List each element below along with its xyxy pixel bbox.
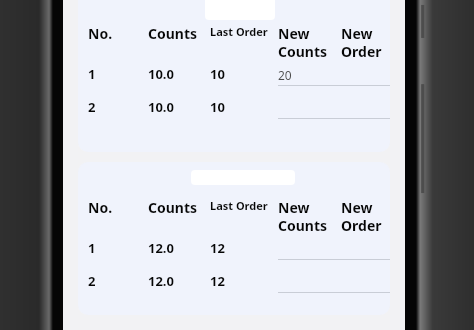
button[interactable]: 1 — [88, 239, 390, 260]
staticText: 12.0 — [148, 239, 210, 257]
button[interactable]: 20 — [278, 65, 341, 86]
button[interactable]: Text field — [341, 98, 390, 119]
staticText: No. — [88, 24, 148, 43]
button[interactable]: 2 — [88, 272, 390, 293]
button[interactable]: Text field — [341, 65, 390, 86]
staticText: Last Order — [210, 198, 278, 213]
staticText: 10 — [210, 98, 278, 116]
staticText: 2 — [88, 272, 148, 290]
button[interactable]: 2 — [88, 98, 390, 119]
staticText: New Counts — [278, 198, 341, 235]
staticText: 10 — [210, 65, 278, 83]
staticText: 12 — [210, 239, 278, 257]
staticText: 10.0 — [148, 98, 210, 116]
staticText: 12 — [210, 272, 278, 290]
staticText: New Order — [341, 198, 390, 235]
button[interactable]: Text field — [278, 98, 341, 119]
staticText: New Order — [341, 24, 390, 61]
staticText: 2 — [88, 98, 148, 116]
button[interactable]: Text field — [341, 239, 390, 260]
staticText: 10.0 — [148, 65, 210, 83]
staticText: 1 — [88, 65, 148, 83]
button[interactable]: Text field — [278, 239, 341, 260]
staticText: Counts — [148, 198, 210, 217]
button[interactable]: Text field — [341, 272, 390, 293]
button[interactable]: Text field — [278, 272, 341, 293]
staticText: No. — [88, 198, 148, 217]
staticText: 12.0 — [148, 272, 210, 290]
staticText: Last Order — [210, 24, 278, 39]
staticText: Counts — [148, 24, 210, 43]
staticText: 1 — [88, 239, 148, 257]
staticText: New Counts — [278, 24, 341, 61]
staticText: 20 — [278, 67, 292, 83]
button[interactable]: 1 — [88, 65, 390, 86]
